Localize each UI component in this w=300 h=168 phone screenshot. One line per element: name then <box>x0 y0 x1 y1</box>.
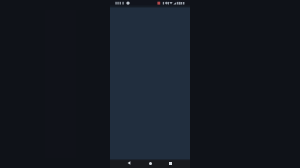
button[interactable]: Recent apps <box>165 159 175 167</box>
button[interactable]: Back <box>124 159 134 167</box>
button[interactable]: Home <box>145 159 155 167</box>
